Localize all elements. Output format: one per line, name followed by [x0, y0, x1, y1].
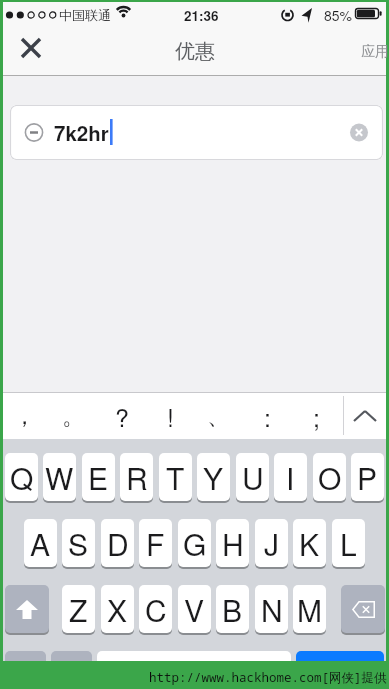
- button[interactable]: :: [243, 393, 292, 439]
- staticText: S: [68, 522, 89, 565]
- button[interactable]: Y: [197, 453, 230, 501]
- staticText: A: [30, 522, 51, 565]
- button[interactable]: U: [236, 453, 269, 501]
- staticText: X: [107, 588, 128, 631]
- staticText: 优惠: [175, 39, 215, 64]
- button[interactable]: 7k2hr: [10, 105, 383, 160]
- button[interactable]: B: [216, 585, 249, 633]
- button[interactable]: ，: [0, 393, 49, 439]
- staticText: O: [318, 456, 342, 499]
- button[interactable]: Z: [62, 585, 95, 633]
- button[interactable]: [5, 585, 49, 633]
- button[interactable]: 、: [194, 393, 243, 439]
- staticText: F: [146, 522, 165, 565]
- staticText: ?: [115, 398, 129, 434]
- button[interactable]: 应用: [361, 28, 389, 75]
- button[interactable]: C: [139, 585, 172, 633]
- staticText: 7k2hr: [54, 118, 109, 147]
- button[interactable]: I: [274, 453, 307, 501]
- button[interactable]: E: [82, 453, 115, 501]
- staticText: 中国联通: [59, 7, 111, 23]
- staticText: K: [299, 522, 320, 565]
- button[interactable]: V: [178, 585, 211, 633]
- button[interactable]: K: [293, 519, 326, 567]
- button[interactable]: [341, 585, 385, 633]
- button[interactable]: F: [139, 519, 172, 567]
- button[interactable]: N: [255, 585, 288, 633]
- button[interactable]: T: [159, 453, 192, 501]
- button[interactable]: ;: [292, 393, 341, 439]
- button[interactable]: 。: [49, 393, 98, 439]
- button[interactable]: H: [216, 519, 249, 567]
- button[interactable]: [344, 393, 386, 439]
- button[interactable]: [51, 651, 92, 661]
- staticText: J: [264, 522, 279, 565]
- staticText: http://www.hackhome.com[网侠]提供: [149, 669, 387, 686]
- button[interactable]: Q: [5, 453, 38, 501]
- button[interactable]: !: [146, 393, 195, 439]
- button[interactable]: R: [120, 453, 153, 501]
- button[interactable]: [296, 651, 384, 661]
- button[interactable]: S: [62, 519, 95, 567]
- staticText: W: [45, 456, 74, 499]
- staticText: L: [340, 522, 357, 565]
- staticText: V: [184, 588, 205, 631]
- staticText: C: [145, 588, 167, 631]
- button[interactable]: G: [178, 519, 211, 567]
- staticText: 85%: [324, 5, 353, 25]
- staticText: 21:36: [184, 6, 219, 25]
- button[interactable]: O: [313, 453, 346, 501]
- staticText: H: [222, 522, 244, 565]
- staticText: !: [167, 398, 174, 434]
- button[interactable]: L: [332, 519, 365, 567]
- staticText: M: [297, 588, 322, 631]
- staticText: P: [357, 456, 378, 499]
- button[interactable]: [11, 28, 51, 68]
- staticText: Z: [69, 588, 88, 631]
- staticText: Q: [10, 456, 34, 499]
- staticText: U: [242, 456, 264, 499]
- staticText: E: [88, 456, 109, 499]
- button[interactable]: X: [101, 585, 134, 633]
- staticText: G: [183, 522, 207, 565]
- staticText: T: [166, 456, 185, 499]
- staticText: R: [126, 456, 148, 499]
- button[interactable]: D: [101, 519, 134, 567]
- staticText: Y: [203, 456, 224, 499]
- staticText: B: [222, 588, 243, 631]
- staticText: ;: [313, 398, 320, 434]
- staticText: 应用: [361, 43, 389, 61]
- button[interactable]: P: [351, 453, 384, 501]
- staticText: 。: [62, 402, 85, 431]
- staticText: :: [264, 398, 271, 434]
- button[interactable]: M: [293, 585, 326, 633]
- button[interactable]: ?: [97, 393, 146, 439]
- button[interactable]: A: [24, 519, 57, 567]
- staticText: N: [261, 588, 283, 631]
- staticText: I: [286, 456, 295, 499]
- staticText: D: [107, 522, 129, 565]
- button[interactable]: J: [255, 519, 288, 567]
- staticText: ，: [13, 402, 36, 431]
- button[interactable]: [5, 651, 46, 661]
- staticText: 、: [207, 402, 230, 431]
- button[interactable]: W: [43, 453, 76, 501]
